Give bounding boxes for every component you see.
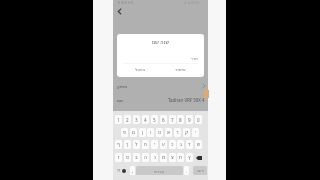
- button[interactable]: 4: [142, 115, 149, 124]
- button[interactable]: אישור: [173, 65, 188, 74]
- staticText: ?1: [117, 168, 121, 173]
- staticText: חדר: [123, 56, 198, 61]
- button[interactable]: ס: [124, 153, 131, 162]
- staticText: 7: [171, 117, 174, 123]
- button[interactable]: Space: [136, 166, 183, 175]
- button[interactable]: 0: [195, 115, 202, 124]
- button[interactable]: 1: [115, 115, 122, 124]
- staticText: צ: [171, 155, 174, 160]
- button[interactable]: כ: [169, 140, 176, 149]
- button[interactable]: ף: [115, 140, 122, 149]
- button[interactable]: .: [184, 166, 189, 175]
- button[interactable]: 5: [151, 115, 158, 124]
- button[interactable]: מתקן: [117, 81, 205, 91]
- staticText: ת: [179, 155, 183, 160]
- staticText: 4: [144, 117, 147, 123]
- button[interactable]: ר: [174, 128, 181, 137]
- button[interactable]: ח: [142, 140, 149, 149]
- button[interactable]: ה: [142, 153, 149, 162]
- staticText: עברית: [154, 169, 165, 173]
- staticText: ץ: [188, 155, 191, 160]
- staticText: 8: [179, 117, 182, 123]
- staticText: ח: [144, 142, 148, 147]
- button[interactable]: ש: [195, 140, 202, 149]
- button[interactable]: שם: [117, 95, 205, 105]
- staticText: ן: [142, 130, 144, 135]
- button[interactable]: חדר: [123, 56, 198, 61]
- staticText: ך: [126, 142, 129, 147]
- button[interactable]: 6: [160, 115, 167, 124]
- button[interactable]: פ: [121, 128, 128, 137]
- staticText: ע: [162, 142, 165, 147]
- staticText: 9: [188, 117, 191, 123]
- staticText: ז: [118, 155, 120, 160]
- staticText: ש: [197, 142, 201, 147]
- staticText: ט: [158, 130, 161, 135]
- staticText: 2: [126, 117, 129, 123]
- button[interactable]: ל: [133, 140, 140, 149]
- button[interactable]: ע: [160, 140, 167, 149]
- button[interactable]: מ: [160, 153, 167, 162]
- button[interactable]: ם: [130, 128, 137, 137]
- button[interactable]: ,: [130, 166, 135, 175]
- staticText: ס: [126, 155, 129, 160]
- button[interactable]: Enter: [193, 166, 207, 175]
- staticText: 0: [197, 117, 200, 123]
- button[interactable]: 9: [186, 115, 193, 124]
- staticText: 3: [135, 117, 138, 123]
- button[interactable]: 8: [177, 115, 184, 124]
- staticText: מתקן: [117, 84, 128, 89]
- button[interactable]: Back: [114, 6, 125, 17]
- staticText: ף: [117, 142, 120, 147]
- staticText: א: [167, 130, 171, 135]
- staticText: Tadiran VRF 50X 4: [168, 97, 205, 103]
- button[interactable]: ב: [133, 153, 140, 162]
- button[interactable]: ג: [177, 140, 184, 149]
- staticText: ד: [188, 142, 191, 147]
- staticText: 6: [162, 117, 165, 123]
- staticText: אישור: [196, 169, 205, 173]
- button[interactable]: ז: [115, 153, 122, 162]
- button[interactable]: ט: [156, 128, 163, 137]
- staticText: ר: [176, 130, 179, 135]
- button[interactable]: ביטול: [133, 65, 148, 74]
- staticText: .: [186, 168, 188, 174]
- staticText: ב: [135, 155, 138, 160]
- button[interactable]: ק: [183, 128, 190, 137]
- staticText: ק: [185, 130, 189, 135]
- staticText: 5: [153, 117, 156, 123]
- staticText: ': [195, 130, 197, 136]
- button[interactable]: ': [192, 128, 199, 137]
- button[interactable]: Backspace: [195, 153, 203, 162]
- button[interactable]: ן: [139, 128, 146, 137]
- button[interactable]: 7: [169, 115, 176, 124]
- staticText: שם: [117, 98, 124, 103]
- button[interactable]: ד: [186, 140, 193, 149]
- staticText: ו: [150, 130, 152, 135]
- staticText: ביטול: [135, 67, 146, 72]
- button[interactable]: Symbols: [116, 166, 127, 175]
- button[interactable]: ך: [124, 140, 131, 149]
- staticText: אישור: [175, 67, 186, 72]
- button[interactable]: ו: [147, 128, 154, 137]
- staticText: ,: [132, 168, 134, 174]
- staticText: ל: [135, 142, 138, 147]
- staticText: ג: [180, 142, 182, 147]
- button[interactable]: ת: [177, 153, 184, 162]
- button[interactable]: י: [151, 140, 158, 149]
- button[interactable]: א: [165, 128, 172, 137]
- staticText: פ: [123, 130, 126, 135]
- staticText: שנה שם: [152, 39, 169, 46]
- button[interactable]: צ: [169, 153, 176, 162]
- staticText: י: [154, 142, 156, 147]
- staticText: כ: [171, 142, 174, 147]
- staticText: מ: [162, 155, 166, 160]
- staticText: ה: [144, 155, 148, 160]
- button[interactable]: 2: [124, 115, 131, 124]
- staticText: נ: [154, 155, 156, 160]
- staticText: ם: [132, 130, 136, 135]
- staticText: 1: [117, 117, 120, 123]
- button[interactable]: נ: [151, 153, 158, 162]
- button[interactable]: ץ: [186, 153, 193, 162]
- button[interactable]: 3: [133, 115, 140, 124]
